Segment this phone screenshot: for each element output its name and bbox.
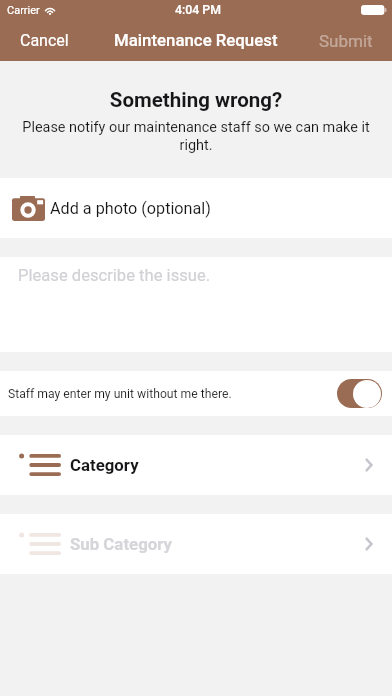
button[interactable]: Add a photo: [0, 178, 392, 238]
other: Add a photo: [12, 196, 45, 221]
staticText: Maintenance Request: [114, 30, 278, 50]
staticText: Cancel: [20, 31, 69, 50]
staticText: Something wrong?: [0, 88, 392, 112]
staticText: Add a photo (optional): [50, 199, 211, 218]
staticText: Staff may enter my unit without me there…: [8, 387, 232, 401]
button[interactable]: Describe the issue: [0, 257, 392, 352]
button[interactable]: Category: [0, 435, 392, 495]
staticText: Sub Category: [70, 534, 172, 554]
button[interactable]: Cancel: [0, 22, 89, 59]
staticText: 4:04 PM: [175, 3, 221, 17]
button[interactable]: Sub Category: [0, 514, 392, 574]
staticText: Carrier: [7, 4, 40, 17]
staticText: Category: [70, 455, 139, 475]
staticText: Please describe the issue.: [18, 266, 211, 285]
button[interactable]: Allow staff entry: [337, 379, 382, 408]
staticText: Please notify our maintenance staff so w…: [16, 119, 376, 154]
staticText: Submit: [319, 31, 373, 51]
button[interactable]: Submit: [300, 22, 392, 60]
